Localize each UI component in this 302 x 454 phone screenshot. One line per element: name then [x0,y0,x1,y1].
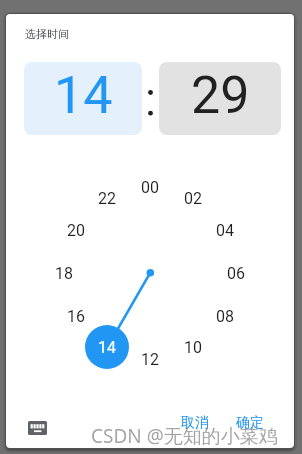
button[interactable]: 00 [130,167,170,207]
button[interactable]: 06 [216,253,256,293]
staticText: 02 [184,189,202,208]
staticText: 选择时间 [25,27,69,41]
staticText: 00 [141,178,159,197]
button[interactable]: 02 [173,178,213,218]
button[interactable]: 18 [44,253,84,293]
staticText: 18 [55,264,73,283]
button[interactable]: 12 [130,339,170,379]
staticText: CSDN @无知的小菜鸡 [91,423,278,448]
staticText: 12 [141,350,159,369]
staticText: 确定 [236,414,264,432]
staticText: 04 [216,221,234,240]
staticText: 22 [98,189,116,208]
button[interactable]: 04 [205,210,245,250]
staticText: 29 [191,65,250,126]
button[interactable]: 29 [159,62,281,135]
button[interactable]: 22 [87,178,127,218]
button[interactable]: 08 [205,296,245,336]
staticText: 取消 [181,414,209,432]
button[interactable]: 确定 [226,410,274,436]
staticText: 14 [54,65,113,126]
button[interactable]: 16 [56,296,96,336]
staticText: 08 [216,307,234,326]
staticText: 20 [67,221,85,240]
button[interactable]: 取消 [171,410,219,436]
staticText: 10 [184,338,202,357]
staticText: 06 [227,264,245,283]
button[interactable]: 14 [85,325,129,369]
staticText: 14 [98,338,116,357]
button[interactable]: 14 [24,62,142,135]
button[interactable]: 20 [56,210,96,250]
button[interactable]: 10 [173,327,213,367]
staticText: 16 [67,307,85,326]
button[interactable] [14,410,60,446]
